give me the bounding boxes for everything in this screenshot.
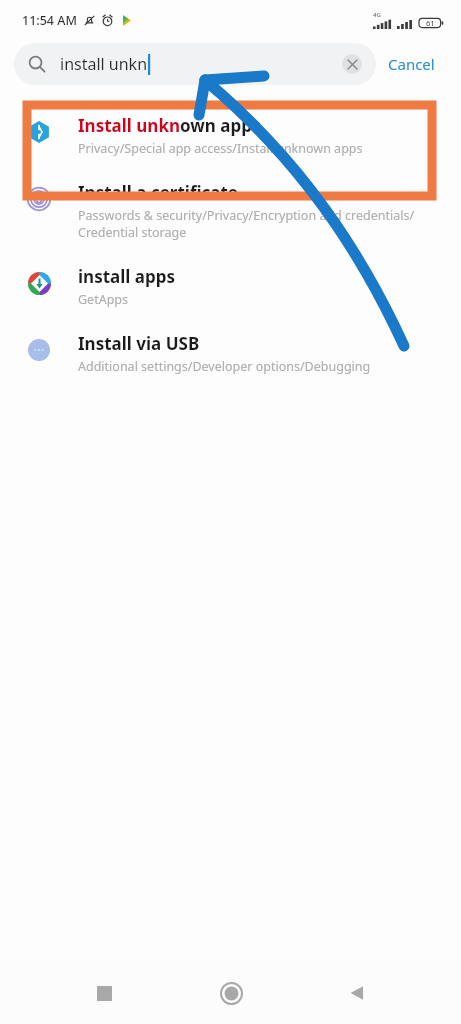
staticText: Cancel: [388, 54, 435, 74]
button[interactable]: Install via USB: [0, 320, 461, 387]
staticText: Install a certificate: [78, 181, 239, 204]
button[interactable]: Recent apps: [81, 970, 127, 1016]
button[interactable]: Install a certificate: [0, 169, 461, 253]
button[interactable]: Home: [208, 970, 254, 1016]
staticText: install unkn: [60, 53, 148, 75]
button[interactable]: install apps: [0, 253, 461, 320]
staticText: Additional settings/Developer options/De…: [78, 358, 371, 375]
button[interactable]: Clear search: [342, 54, 362, 74]
staticText: 11:54 AM: [22, 12, 77, 29]
staticText: Privacy/Special app access/Install unkno…: [78, 140, 363, 157]
button[interactable]: Install unknown apps: [0, 102, 461, 169]
staticText: Install via USB: [78, 332, 200, 355]
button[interactable]: Cancel: [376, 46, 447, 82]
staticText: Install unknown apps: [78, 114, 261, 137]
staticText: 4G: [373, 11, 381, 19]
staticText: install apps: [78, 265, 175, 288]
button[interactable]: Back: [334, 970, 380, 1016]
button[interactable]: install unkn: [14, 43, 376, 85]
staticText: Passwords & security/Privacy/Encryption …: [78, 207, 415, 241]
staticText: GetApps: [78, 291, 129, 308]
staticText: 61: [426, 18, 435, 28]
